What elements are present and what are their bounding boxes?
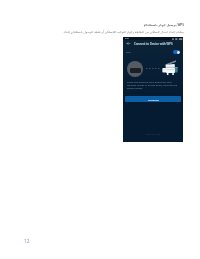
staticText: 9:41 <box>125 37 129 40</box>
staticText: WPS <box>126 51 131 54</box>
staticText: Press and hold the WPS button on your wi… <box>127 80 179 89</box>
staticText: يمكنك إعداد اتصال لاسلكي بين الطابعة وجه… <box>60 30 184 34</box>
button[interactable]: Back <box>126 41 131 46</box>
button[interactable]: Continue <box>125 96 181 102</box>
button[interactable]: WPS <box>126 49 180 55</box>
staticText: Continue <box>148 98 159 101</box>
staticText: Connect to Device with WPS <box>134 42 173 46</box>
staticText: Skip this step <box>146 133 161 136</box>
staticText: 12 <box>24 238 30 244</box>
staticText: توصيل جهاز باستخدام WPS <box>143 23 184 27</box>
